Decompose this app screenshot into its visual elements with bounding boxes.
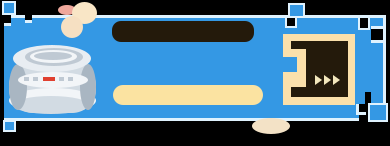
button[interactable]: Action bbox=[0, 0, 390, 146]
button[interactable]: Continue bbox=[0, 0, 390, 146]
